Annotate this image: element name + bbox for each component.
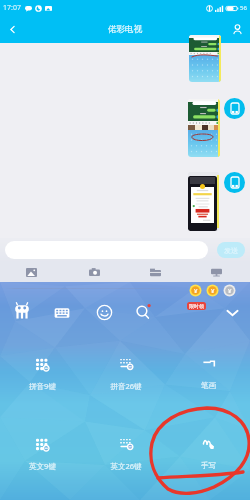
button[interactable]: Reward coin xyxy=(223,284,236,297)
staticText: 17:07 xyxy=(3,3,21,13)
button[interactable]: Reward coin xyxy=(206,284,219,297)
button[interactable]: Files xyxy=(145,262,165,282)
staticText: 限时领 xyxy=(189,303,204,309)
staticText: ¥ xyxy=(228,287,232,295)
button[interactable]: 拼音26键 xyxy=(84,357,167,391)
button[interactable]: Emoji xyxy=(96,304,113,321)
button[interactable]: Contact avatar xyxy=(224,172,245,193)
button[interactable]: Keyboard xyxy=(54,305,70,321)
button[interactable]: 英文26键 xyxy=(84,437,167,471)
staticText: 偌彩电视 xyxy=(108,24,142,35)
button[interactable]: Assistant xyxy=(13,302,31,320)
staticText: 手写 xyxy=(201,461,216,470)
button[interactable]: Message input xyxy=(5,241,208,259)
staticText: 56 xyxy=(240,4,247,12)
button[interactable]: 笔画 xyxy=(167,357,250,390)
button[interactable]: Back xyxy=(0,16,24,43)
button[interactable]: Screen share xyxy=(206,262,226,282)
button[interactable]: Contact avatar xyxy=(224,98,245,119)
staticText: ¥ xyxy=(194,287,198,295)
button[interactable]: 英文9键 xyxy=(0,437,84,471)
button[interactable]: Photos xyxy=(21,262,41,282)
button[interactable]: 手写 xyxy=(167,437,250,470)
staticText: 英文9键 xyxy=(29,461,56,471)
button[interactable]: Reward coin xyxy=(189,284,202,297)
staticText: 拼音9键 xyxy=(29,381,56,391)
staticText: 发送 xyxy=(224,246,238,255)
staticText: 笔画 xyxy=(201,381,216,390)
button[interactable]: Profile xyxy=(224,16,250,43)
button[interactable]: Collapse keyboard panel xyxy=(224,304,241,321)
button[interactable]: Screenshot image xyxy=(188,99,220,157)
button[interactable]: 限时领 xyxy=(189,303,204,309)
button[interactable]: Photo of a phone xyxy=(188,172,219,231)
button[interactable]: 拼音9键 xyxy=(0,357,84,391)
staticText: 拼音26键 xyxy=(110,381,142,391)
button[interactable]: Screenshot image xyxy=(189,35,221,82)
button[interactable]: Camera xyxy=(84,262,104,282)
button[interactable]: Search xyxy=(134,303,152,321)
button[interactable]: 发送 xyxy=(217,242,245,258)
staticText: 英文26键 xyxy=(110,461,142,471)
staticText: ¥ xyxy=(211,287,215,295)
